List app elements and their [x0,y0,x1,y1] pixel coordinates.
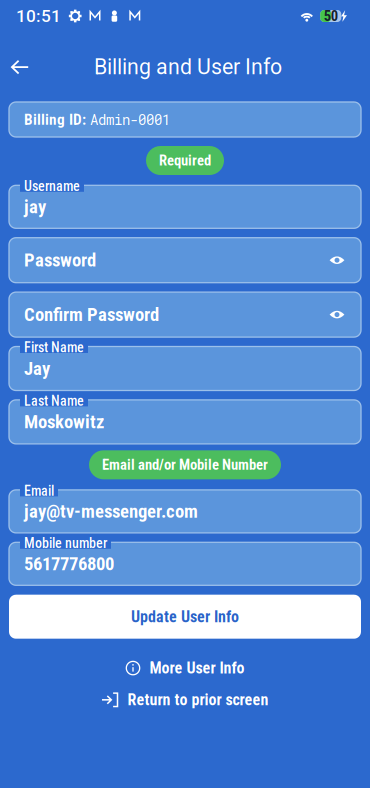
staticText: Mobile number [24,535,107,551]
staticText: 5617776800 [24,553,114,575]
staticText: Moskowitz [24,411,104,433]
staticText: Billing and User Info [94,54,282,79]
button[interactable]: Show password [324,304,350,325]
button[interactable]: More User Info [125,653,244,683]
staticText: Update User Info [131,607,239,626]
button[interactable]: Show password [324,250,350,271]
button[interactable]: Return to prior screen [101,684,268,715]
staticText: Jay [24,358,50,379]
button[interactable]: Back [1,48,39,85]
staticText: First Name [24,339,84,356]
staticText: Password [24,249,96,271]
staticText: Confirm Password [24,304,159,326]
staticText: 50 [324,7,338,25]
staticText: Required [159,152,211,169]
staticText: 10:51 [16,6,61,26]
staticText: More User Info [149,659,244,677]
staticText: Username [24,178,80,194]
staticText: jay [24,196,46,218]
staticText: Email and/or Mobile Number [102,456,268,473]
staticText: Return to prior screen [127,690,268,709]
staticText: jay@tv-messenger.com [24,500,198,522]
staticText: Email [24,483,54,499]
staticText: Admin-0001 [90,110,170,129]
staticText: Last Name [24,393,84,409]
staticText: Billing ID: [24,110,90,128]
button[interactable]: Update User Info [9,595,361,639]
